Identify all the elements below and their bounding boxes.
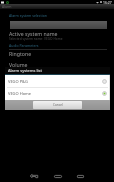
staticText: Ringtone bbox=[9, 50, 32, 57]
staticText: Cancel bbox=[53, 103, 63, 107]
staticText: VEGO P&G bbox=[8, 79, 28, 84]
button[interactable]: Cancel bbox=[33, 101, 82, 109]
button[interactable] bbox=[10, 21, 107, 29]
staticText: Selected system name: VEGO Home bbox=[9, 37, 63, 41]
staticText: Alarm system selection bbox=[9, 13, 47, 18]
button[interactable]: VEGO P&G bbox=[5, 75, 110, 87]
staticText: Audio Parameters bbox=[9, 43, 39, 48]
staticText: Alarm bbox=[2, 4, 12, 9]
staticText: Alarm systems list bbox=[8, 68, 42, 73]
button[interactable]: Recent apps bbox=[70, 169, 95, 182]
staticText: Active system name bbox=[9, 30, 58, 37]
button[interactable]: Back bbox=[19, 169, 45, 182]
staticText: Volume bbox=[9, 61, 28, 68]
button[interactable]: Home bbox=[45, 169, 70, 182]
staticText: VEGO Home bbox=[8, 91, 32, 96]
staticText: 16:27 bbox=[103, 0, 112, 4]
button[interactable]: VEGO Home bbox=[5, 88, 110, 99]
